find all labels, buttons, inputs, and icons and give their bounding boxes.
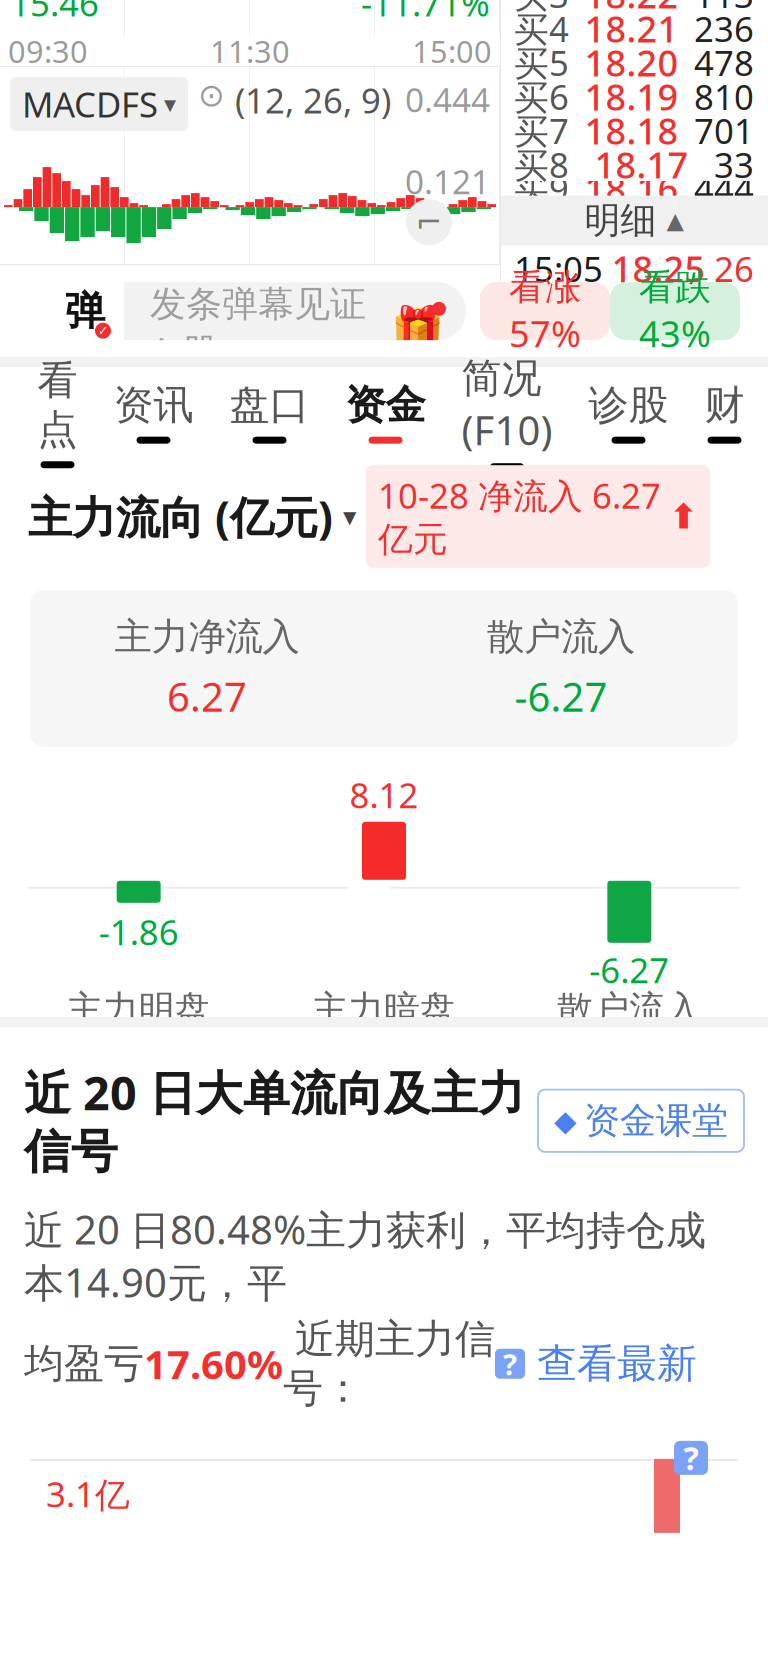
staticText: 15:05 xyxy=(514,246,603,292)
staticText: 18.22 xyxy=(584,0,678,18)
staticText: 3.1亿 xyxy=(46,1471,130,1517)
button[interactable]: MACDFS xyxy=(10,77,188,131)
staticText: 买3 xyxy=(514,0,569,18)
staticText: ▲ xyxy=(666,208,683,233)
staticText: 15:00 xyxy=(412,31,492,71)
staticText: 买8 xyxy=(514,142,569,188)
staticText: 散户流入 xyxy=(557,987,701,1031)
staticText: 看涨57% xyxy=(509,265,581,357)
button[interactable]: 弹 xyxy=(46,282,466,340)
staticText: 113 xyxy=(694,0,754,18)
button[interactable]: 盘口 xyxy=(211,367,327,457)
staticText: 买9 xyxy=(514,166,569,212)
staticText: 10-28 净流入 6.27 亿元 xyxy=(378,472,661,561)
staticText: 查看最新 xyxy=(525,1339,697,1388)
staticText: 主力暗盘 xyxy=(312,987,456,1031)
staticText: 盘口 xyxy=(229,380,309,430)
staticText: ▾ xyxy=(164,90,176,118)
staticText: 主力净流入 xyxy=(114,614,299,660)
staticText: 看跌43% xyxy=(639,265,711,357)
staticText: ▾ xyxy=(343,501,356,532)
staticText: ? xyxy=(503,1344,517,1383)
staticText: 均盈亏 xyxy=(24,1339,144,1388)
button[interactable]: Expand chart xyxy=(406,199,452,245)
staticText: ◆ xyxy=(554,1104,577,1137)
button[interactable]: 资讯 xyxy=(95,367,211,457)
staticText: 买7 xyxy=(514,108,569,154)
button[interactable]: 明细 xyxy=(500,196,768,246)
staticText: ✓ xyxy=(97,323,108,338)
staticText: 11:30 xyxy=(210,31,290,71)
staticText: 8.12 xyxy=(349,772,418,818)
staticText: 资讯 xyxy=(113,380,193,430)
staticText: -11.71% xyxy=(361,0,490,26)
staticText: 资金 xyxy=(345,380,425,430)
staticText: 近 20 日80.48%主力获利，平均持仓成本14.90元，平 xyxy=(24,1202,706,1309)
button[interactable]: 看涨57% xyxy=(480,282,610,340)
staticText: 18.25 xyxy=(611,245,705,292)
staticText: -1.86 xyxy=(99,909,179,955)
staticText: ⌐ xyxy=(415,204,442,240)
staticText: MACDFS xyxy=(22,81,158,127)
staticText: 33 xyxy=(714,142,754,188)
staticText: 6.27 xyxy=(167,670,247,723)
staticText: 701 xyxy=(694,108,754,154)
button[interactable]: 诊股 xyxy=(570,367,686,457)
staticText: 简况(F10) xyxy=(461,354,552,456)
staticText: 资金课堂 xyxy=(584,1099,728,1143)
staticText: 15.46 xyxy=(10,0,99,26)
staticText: 财 xyxy=(704,380,744,430)
staticText: 明细 xyxy=(584,198,656,243)
staticText: 买5 xyxy=(514,40,569,86)
staticText: 26 xyxy=(714,246,754,292)
staticText: -6.27 xyxy=(514,670,607,723)
staticText: 18.20 xyxy=(584,39,678,86)
button[interactable]: 主力流向 (亿元) xyxy=(28,487,356,546)
staticText: 444 xyxy=(694,166,754,212)
staticText: (12, 26, 9) xyxy=(235,77,391,123)
button[interactable]: 看点 xyxy=(19,367,95,457)
staticText: 18.21 xyxy=(584,5,678,52)
staticText: 0.444 xyxy=(405,77,490,121)
button[interactable]: Chart help xyxy=(674,1441,708,1475)
staticText: ⊙ xyxy=(188,77,235,113)
staticText: 买6 xyxy=(514,74,569,120)
staticText: 18.16 xyxy=(584,165,678,212)
button[interactable]: Help xyxy=(495,1349,525,1379)
staticText: 18.18 xyxy=(584,107,678,154)
button[interactable]: 看跌43% xyxy=(610,282,740,340)
staticText: 810 xyxy=(694,74,754,120)
staticText: 17.60% xyxy=(144,1337,283,1390)
button[interactable]: ◆ xyxy=(538,1090,744,1152)
staticText: 18.17 xyxy=(594,141,688,188)
button[interactable]: 简况(F10) xyxy=(443,367,570,457)
button[interactable]: 财 xyxy=(686,367,762,457)
staticText: 236 xyxy=(694,6,754,52)
staticText: 看点 xyxy=(37,356,77,454)
button[interactable]: 资金 xyxy=(327,367,443,457)
staticText: 主力明盘 xyxy=(67,987,211,1031)
staticText: 散户流入 xyxy=(487,614,635,660)
staticText: 近 20 日大单流向及主力信号 xyxy=(24,1061,525,1180)
staticText: 发条弹幕见证 A 股 xyxy=(150,282,366,374)
staticText: 0.121 xyxy=(405,159,490,203)
staticText: 近期主力信号： xyxy=(283,1315,495,1413)
staticText: 18.19 xyxy=(584,73,678,120)
button[interactable]: 查看最新 xyxy=(525,1339,697,1388)
staticText: 买4 xyxy=(514,6,569,52)
staticText: 🎁 xyxy=(391,304,444,353)
staticText: 478 xyxy=(694,40,754,86)
staticText: ? xyxy=(683,1437,698,1479)
staticText: 弹 xyxy=(65,286,105,336)
staticText: 09:30 xyxy=(8,31,88,71)
staticText: 主力流向 (亿元) xyxy=(28,487,333,546)
staticText: ⬆ xyxy=(669,497,698,536)
staticText: -6.27 xyxy=(589,947,669,993)
staticText: 诊股 xyxy=(588,380,668,430)
